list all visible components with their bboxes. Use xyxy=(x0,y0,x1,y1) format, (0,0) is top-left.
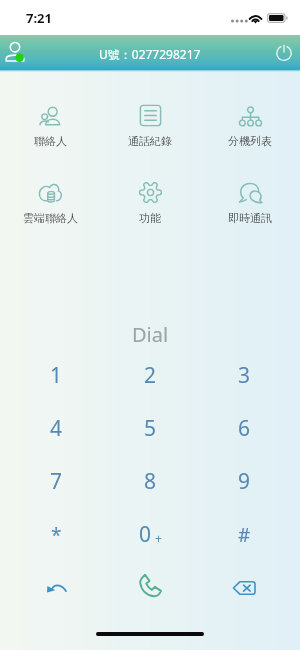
button[interactable]: 功能 xyxy=(100,171,200,225)
staticText: 7 xyxy=(50,467,63,496)
staticText: 聯絡人 xyxy=(34,134,67,148)
staticText: # xyxy=(238,522,251,548)
staticText: 功能 xyxy=(139,211,161,225)
button[interactable]: 0 xyxy=(103,508,197,561)
staticText: 雲端聯絡人 xyxy=(23,211,78,225)
button[interactable]: * xyxy=(9,508,103,561)
button[interactable]: Account status xyxy=(0,37,30,67)
staticText: 1 xyxy=(50,361,63,390)
button[interactable]: 8 xyxy=(103,455,197,508)
button[interactable]: 7 xyxy=(9,455,103,508)
button[interactable]: Power xyxy=(269,37,299,67)
staticText: 0 xyxy=(139,520,152,549)
button[interactable]: Backspace xyxy=(197,561,291,614)
staticText: 8 xyxy=(144,467,157,496)
button[interactable]: Undo xyxy=(9,561,103,614)
button[interactable]: 即時通訊 xyxy=(200,171,300,225)
staticText: 7:21 xyxy=(26,9,52,27)
button[interactable]: 3 xyxy=(197,349,291,402)
button[interactable]: 分機列表 xyxy=(200,94,300,148)
button[interactable]: Call xyxy=(103,561,197,614)
staticText: 3 xyxy=(238,361,251,390)
button[interactable]: 4 xyxy=(9,402,103,455)
staticText: 通話紀錄 xyxy=(128,134,172,148)
staticText: 9 xyxy=(238,467,251,496)
button[interactable]: 雲端聯絡人 xyxy=(0,171,100,225)
staticText: 2 xyxy=(144,361,157,390)
button[interactable]: 9 xyxy=(197,455,291,508)
staticText: 5 xyxy=(144,414,157,443)
button[interactable]: 5 xyxy=(103,402,197,455)
staticText: 4 xyxy=(50,414,63,443)
staticText: 即時通訊 xyxy=(228,211,272,225)
staticText: * xyxy=(51,522,62,548)
button[interactable]: 聯絡人 xyxy=(0,94,100,148)
staticText: 分機列表 xyxy=(228,134,272,148)
staticText: Dial xyxy=(132,321,169,348)
button[interactable]: 通話紀錄 xyxy=(100,94,200,148)
staticText: U號：0277298217 xyxy=(99,46,201,62)
button[interactable]: 6 xyxy=(197,402,291,455)
staticText: + xyxy=(155,530,162,546)
button[interactable]: # xyxy=(197,508,291,561)
staticText: 6 xyxy=(238,414,251,443)
button[interactable]: 1 xyxy=(9,349,103,402)
button[interactable]: 2 xyxy=(103,349,197,402)
